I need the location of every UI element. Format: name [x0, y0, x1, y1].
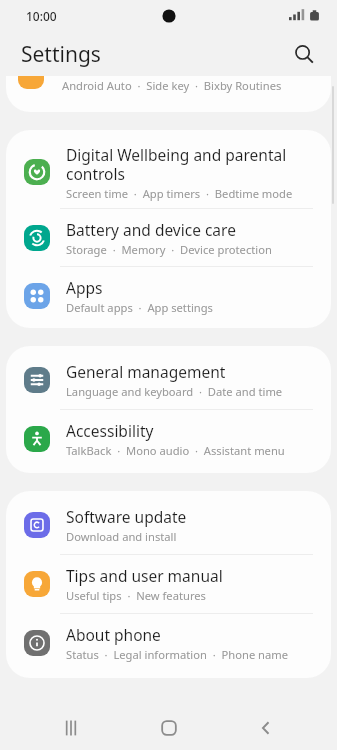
button[interactable]: Recent apps — [44, 706, 98, 750]
staticText: Storage · Memory · Device protection — [66, 242, 272, 257]
staticText: Screen time · App timers · Bedtime mode — [66, 186, 293, 201]
staticText: TalkBack · Mono audio · Assistant menu — [66, 443, 285, 458]
button[interactable]: Tips and user manual — [6, 555, 331, 613]
staticText: General management — [66, 361, 226, 382]
staticText: Useful tips · New features — [66, 588, 206, 603]
button[interactable]: Android Auto · Side key · Bixby Routines — [6, 76, 331, 112]
staticText: Accessibility — [66, 420, 154, 441]
staticText: Software update — [66, 506, 187, 527]
button[interactable]: Battery and device care — [6, 209, 331, 266]
button[interactable]: Home — [142, 706, 196, 750]
staticText: Apps — [66, 277, 103, 298]
button[interactable]: Digital Wellbeing and parental controls — [6, 136, 331, 208]
staticText: Default apps · App settings — [66, 300, 213, 315]
button[interactable]: Back — [239, 706, 293, 750]
staticText: Language and keyboard · Date and time — [66, 384, 283, 399]
staticText: Android Auto · Side key · Bixby Routines — [62, 78, 282, 93]
staticText: Tips and user manual — [66, 565, 223, 586]
staticText: Digital Wellbeing and parental controls — [66, 144, 287, 184]
button[interactable]: General management — [6, 351, 331, 409]
button[interactable]: Accessibility — [6, 410, 331, 468]
button[interactable]: Software update — [6, 496, 331, 554]
button[interactable]: Search — [285, 35, 323, 73]
staticText: About phone — [66, 624, 161, 645]
staticText: Battery and device care — [66, 219, 236, 240]
staticText: 10:00 — [26, 8, 57, 24]
staticText: Status · Legal information · Phone name — [66, 647, 289, 662]
staticText: Download and install — [66, 529, 177, 544]
button[interactable]: Apps — [6, 267, 331, 324]
button[interactable]: About phone — [6, 614, 331, 672]
staticText: Settings — [21, 40, 101, 69]
